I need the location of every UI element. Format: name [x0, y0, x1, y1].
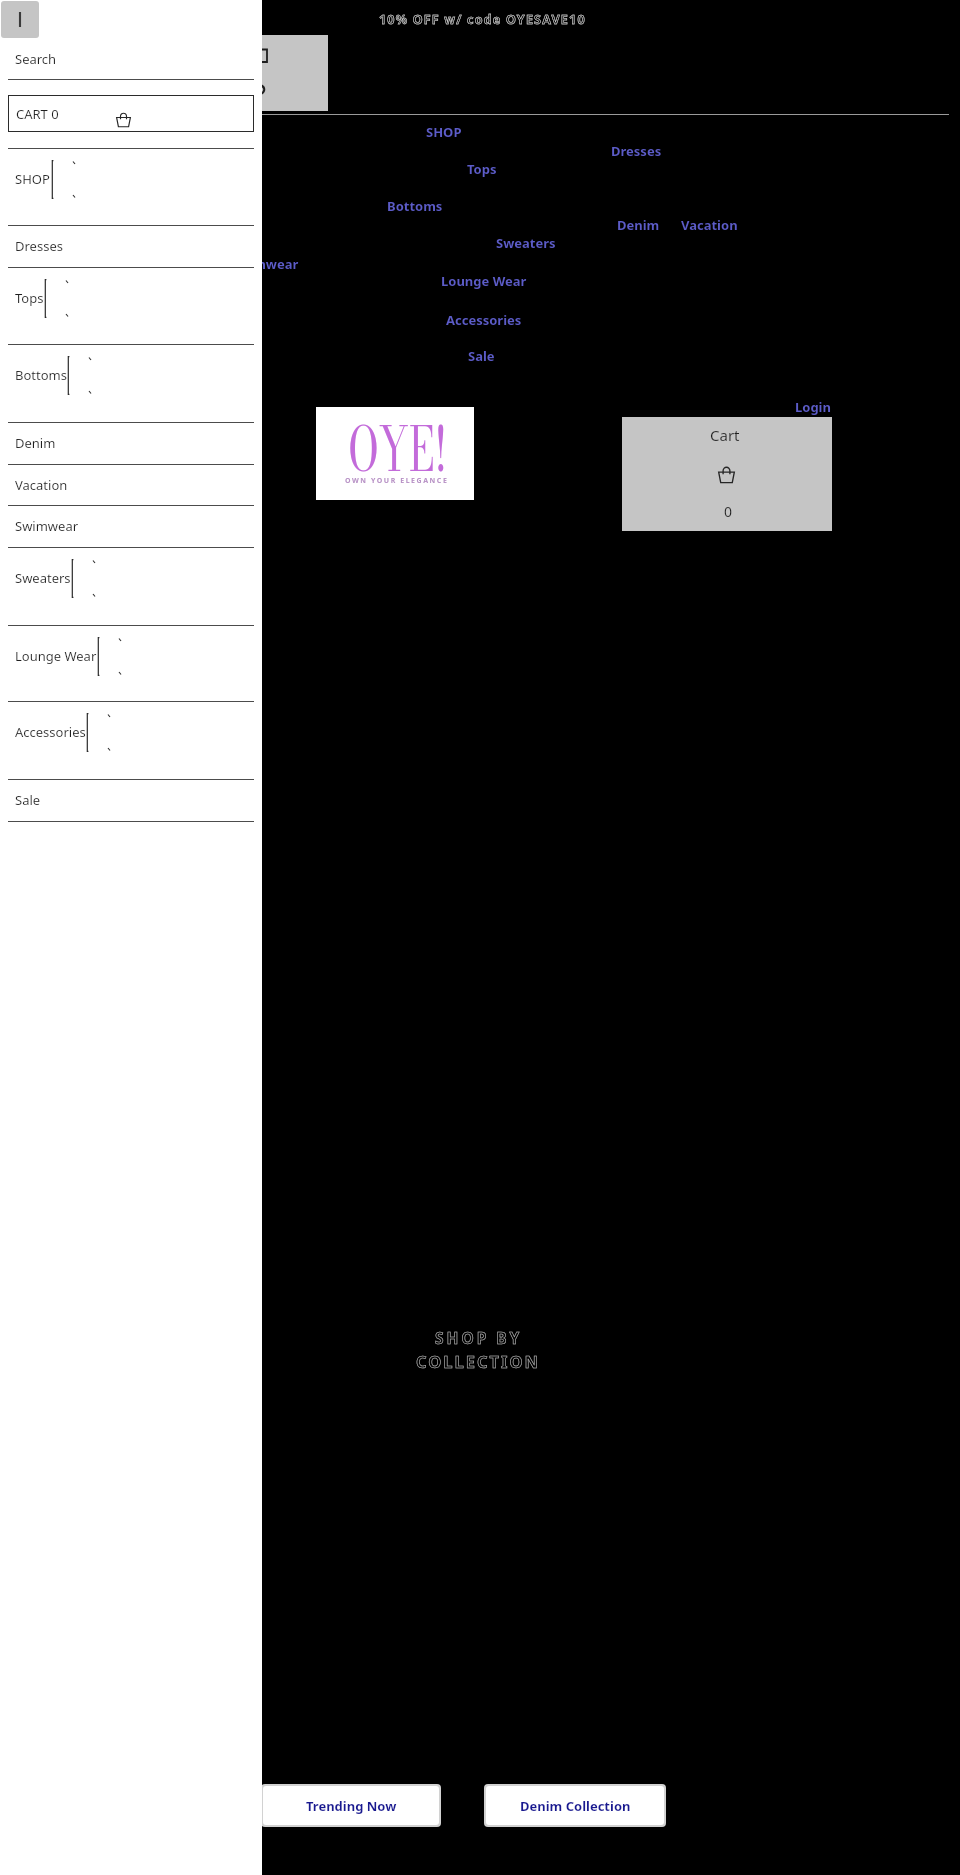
- staticText: Sweaters: [15, 569, 71, 587]
- button[interactable]: Dresses: [611, 142, 662, 160]
- staticText: Search: [15, 50, 57, 68]
- staticText: Cart: [710, 425, 740, 445]
- staticText: SHOP: [426, 123, 462, 141]
- staticText: OWN YOUR ELEGANCE: [345, 476, 449, 486]
- staticText: Swimwear: [15, 517, 79, 535]
- button[interactable]: Swimwear: [0, 505, 262, 547]
- staticText: Lounge Wear: [441, 272, 527, 290]
- button[interactable]: Sweaters: [496, 234, 556, 252]
- staticText: Dresses: [611, 142, 662, 160]
- staticText: Sweaters: [496, 234, 556, 252]
- button[interactable]: Vacation: [681, 216, 738, 234]
- button[interactable]: Tops: [467, 160, 497, 178]
- staticText: COLLECTION: [416, 1350, 540, 1372]
- staticText: Bottoms: [387, 197, 443, 215]
- staticText: Denim: [617, 216, 660, 234]
- button[interactable]: Accessories: [0, 701, 262, 779]
- button[interactable]: Cart: [622, 417, 832, 531]
- button[interactable]: Bottoms: [0, 344, 262, 422]
- staticText: Sale: [15, 791, 41, 809]
- staticText: Dresses: [15, 237, 63, 255]
- button[interactable]: Trending Now: [263, 1786, 439, 1825]
- staticText: Vacation: [681, 216, 738, 234]
- button[interactable]: Tops: [0, 267, 262, 344]
- staticText: Tops: [467, 160, 497, 178]
- staticText: Lounge Wear: [15, 647, 97, 665]
- button[interactable]: Sweaters: [0, 547, 262, 625]
- button[interactable]: Vacation: [0, 464, 262, 505]
- staticText: OYE!: [348, 401, 448, 496]
- staticText: 10% OFF w/ code OYESAVE10: [379, 11, 586, 28]
- button[interactable]: SHOP: [426, 123, 462, 141]
- button[interactable]: Sale: [0, 779, 262, 821]
- staticText: Login: [795, 398, 831, 416]
- staticText: Denim Collection: [520, 1797, 631, 1815]
- button[interactable]: CART 0: [8, 95, 254, 132]
- staticText: Sale: [468, 347, 495, 365]
- staticText: Tops: [15, 289, 44, 307]
- button[interactable]: Sale: [468, 347, 495, 365]
- staticText: SHOP: [15, 170, 50, 188]
- button[interactable]: Login: [795, 398, 831, 416]
- button[interactable]: Bottoms: [387, 197, 443, 215]
- button[interactable]: Search: [0, 38, 262, 79]
- button[interactable]: Cart: [200, 35, 328, 111]
- staticText: Trending Now: [306, 1797, 397, 1815]
- button[interactable]: Accessories: [446, 311, 522, 329]
- button[interactable]: OYE, Own Your Elegance — home: [316, 407, 474, 500]
- button[interactable]: Denim: [617, 216, 660, 234]
- button[interactable]: Denim: [0, 422, 262, 464]
- button[interactable]: Dresses: [0, 225, 262, 267]
- staticText: SHOP BY: [435, 1327, 523, 1348]
- button[interactable]: SHOP: [0, 148, 262, 225]
- button[interactable]: Lounge Wear: [0, 625, 262, 701]
- staticText: Accessories: [15, 723, 86, 741]
- button[interactable]: Close menu: [1, 1, 39, 38]
- staticText: Accessories: [446, 311, 522, 329]
- button[interactable]: Lounge Wear: [441, 272, 527, 290]
- button[interactable]: Denim Collection: [486, 1786, 664, 1825]
- button[interactable]: Swimwear: [231, 255, 299, 273]
- staticText: Swimwear: [231, 255, 299, 273]
- staticText: 0: [724, 502, 733, 521]
- staticText: Vacation: [15, 476, 68, 494]
- staticText: Denim: [15, 434, 56, 452]
- staticText: Bottoms: [15, 366, 67, 384]
- staticText: CART 0: [16, 105, 59, 123]
